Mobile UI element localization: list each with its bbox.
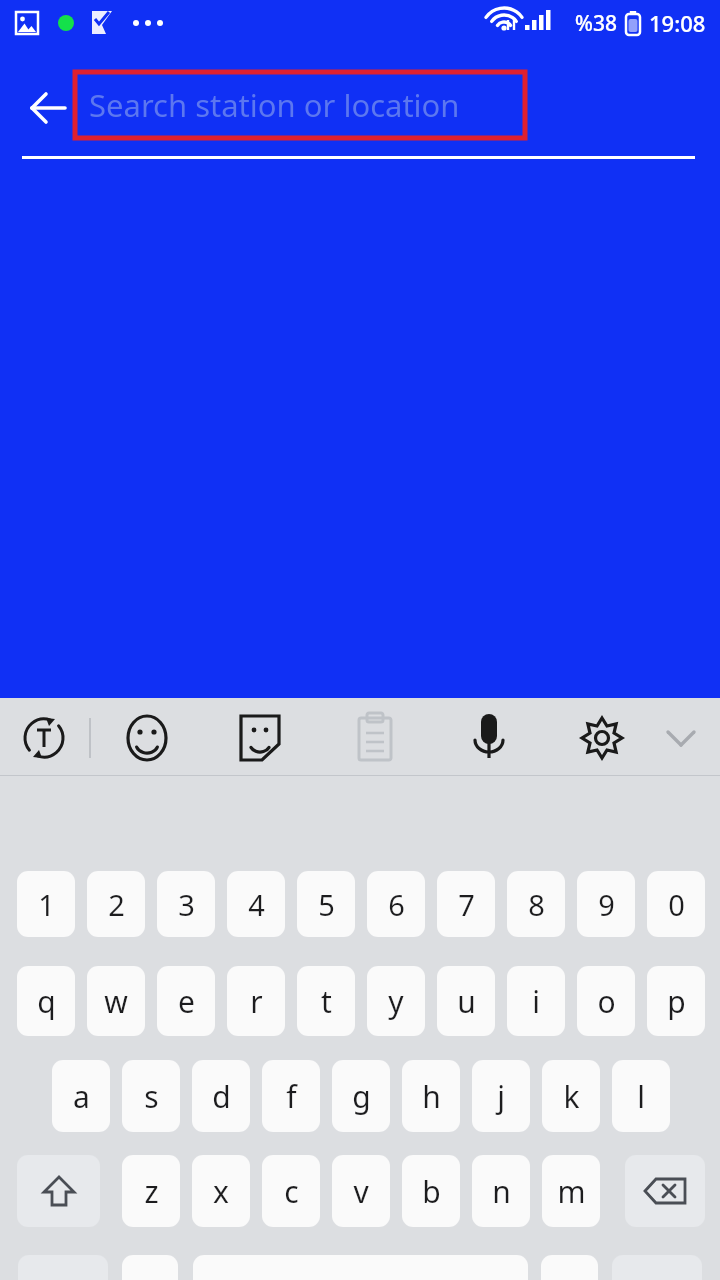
- button[interactable]: m: [542, 1155, 600, 1227]
- button[interactable]: j: [472, 1060, 530, 1132]
- button[interactable]: v: [332, 1155, 390, 1227]
- button[interactable]: Hide keyboard: [651, 706, 711, 766]
- staticText: z: [144, 1171, 159, 1212]
- button[interactable]: Backspace: [625, 1155, 705, 1227]
- button[interactable]: 9: [577, 871, 635, 937]
- button[interactable]: 5: [297, 871, 355, 937]
- button[interactable]: l: [612, 1060, 670, 1132]
- button[interactable]: p: [647, 966, 705, 1036]
- staticText: l: [637, 1076, 645, 1117]
- button[interactable]: 2: [87, 871, 145, 937]
- staticText: 2: [108, 885, 125, 924]
- button[interactable]: Voice input: [459, 706, 519, 766]
- staticText: x: [213, 1171, 229, 1212]
- staticText: Search station or location: [89, 84, 460, 126]
- button[interactable]: b: [402, 1155, 460, 1227]
- button[interactable]: z: [122, 1155, 180, 1227]
- button[interactable]: 7: [437, 871, 495, 937]
- button[interactable]: g: [332, 1060, 390, 1132]
- button[interactable]: ,: [122, 1255, 178, 1280]
- staticText: t: [321, 981, 332, 1022]
- button[interactable]: f: [262, 1060, 320, 1132]
- staticText: w: [104, 981, 128, 1022]
- button[interactable]: i: [507, 966, 565, 1036]
- staticText: d: [212, 1076, 231, 1117]
- button[interactable]: Stickers: [230, 706, 290, 766]
- staticText: f: [286, 1076, 297, 1117]
- button[interactable]: e: [157, 966, 215, 1036]
- staticText: o: [597, 981, 616, 1022]
- staticText: e: [178, 981, 195, 1022]
- button[interactable]: o: [577, 966, 635, 1036]
- staticText: h: [422, 1076, 441, 1117]
- button[interactable]: s: [122, 1060, 180, 1132]
- staticText: k: [563, 1076, 580, 1117]
- button[interactable]: a: [52, 1060, 110, 1132]
- button[interactable]: 6: [367, 871, 425, 937]
- staticText: %38: [575, 9, 617, 38]
- staticText: r: [250, 981, 263, 1022]
- button[interactable]: r: [227, 966, 285, 1036]
- button[interactable]: Clipboard: [345, 706, 405, 766]
- button[interactable]: 3: [157, 871, 215, 937]
- button[interactable]: Back: [18, 78, 78, 138]
- staticText: n: [492, 1171, 511, 1212]
- staticText: 7: [458, 885, 475, 924]
- button[interactable]: 8: [507, 871, 565, 937]
- staticText: m: [557, 1171, 586, 1212]
- button[interactable]: Translate: [14, 706, 74, 766]
- button[interactable]: 0: [647, 871, 705, 937]
- staticText: 19:08: [649, 8, 706, 38]
- button[interactable]: .: [541, 1255, 598, 1280]
- button[interactable]: h: [402, 1060, 460, 1132]
- staticText: c: [284, 1171, 299, 1212]
- staticText: 8: [528, 885, 545, 924]
- staticText: 0: [668, 885, 685, 924]
- staticText: b: [422, 1171, 441, 1212]
- staticText: q: [37, 981, 56, 1022]
- staticText: 9: [598, 885, 615, 924]
- button[interactable]: y: [367, 966, 425, 1036]
- staticText: 5: [318, 885, 335, 924]
- button[interactable]: x: [192, 1155, 250, 1227]
- button[interactable]: Emoji: [117, 706, 177, 766]
- staticText: a: [73, 1076, 90, 1117]
- button[interactable]: c: [262, 1155, 320, 1227]
- staticText: s: [144, 1076, 159, 1117]
- button[interactable]: u: [437, 966, 495, 1036]
- staticText: p: [667, 981, 686, 1022]
- button[interactable]: Shift: [17, 1155, 100, 1227]
- staticText: i: [532, 981, 540, 1022]
- staticText: y: [388, 981, 404, 1022]
- staticText: 6: [388, 885, 405, 924]
- button[interactable]: n: [472, 1155, 530, 1227]
- staticText: 4: [248, 885, 265, 924]
- button[interactable]: q: [17, 966, 75, 1036]
- button[interactable]: w: [87, 966, 145, 1036]
- staticText: g: [352, 1076, 371, 1117]
- staticText: j: [497, 1076, 505, 1117]
- staticText: v: [353, 1171, 369, 1212]
- button[interactable]: 1: [17, 871, 75, 937]
- button[interactable]: 4: [227, 871, 285, 937]
- button[interactable]: t: [297, 966, 355, 1036]
- staticText: 1: [38, 885, 55, 924]
- button[interactable]: Search station or location: [75, 72, 525, 138]
- staticText: u: [457, 981, 476, 1022]
- staticText: 3: [178, 885, 195, 924]
- button[interactable]: k: [542, 1060, 600, 1132]
- button[interactable]: d: [192, 1060, 250, 1132]
- button[interactable]: Settings: [572, 706, 632, 766]
